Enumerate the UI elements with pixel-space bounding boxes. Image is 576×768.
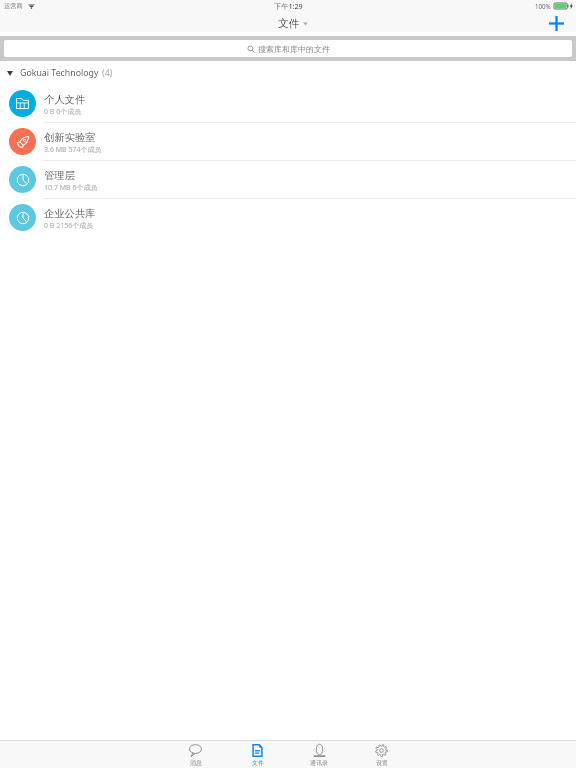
staticText: 运营商 [4,2,23,10]
button[interactable]: 管理层 [0,161,576,199]
button[interactable]: 个人文件 [0,85,576,123]
button[interactable]: 通讯录 [288,741,350,768]
button[interactable]: Gokuai Technology [0,61,576,85]
button[interactable]: 消息 [164,741,226,768]
staticText: 企业公共库 [44,207,96,220]
staticText: 文件 [278,17,299,30]
staticText: Gokuai Technology [20,67,99,79]
button[interactable]: 文件 [226,741,288,768]
staticText: 0 B 2156个成员 [44,221,94,231]
staticText: 0 B 0个成员 [44,107,82,117]
staticText: 个人文件 [44,93,86,106]
staticText: 消息 [190,759,202,767]
button[interactable]: 企业公共库 [0,199,576,236]
staticText: 100% [535,2,551,10]
staticText: (4) [102,67,113,79]
staticText: 管理层 [44,169,75,182]
button[interactable]: 搜索库和库中的文件 [4,40,572,57]
staticText: 设置 [376,759,388,767]
staticText: 搜索库和库中的文件 [258,44,330,54]
staticText: 10.7 MB 6个成员 [44,183,98,193]
staticText: 下午1:29 [274,1,303,11]
button[interactable]: 创新实验室 [0,123,576,161]
button[interactable]: Add [546,15,566,32]
staticText: 通讯录 [310,759,328,767]
staticText: 文件 [252,759,264,767]
staticText: 3.6 MB 574个成员 [44,145,102,155]
staticText: 创新实验室 [44,131,96,144]
button[interactable]: 设置 [350,741,412,768]
